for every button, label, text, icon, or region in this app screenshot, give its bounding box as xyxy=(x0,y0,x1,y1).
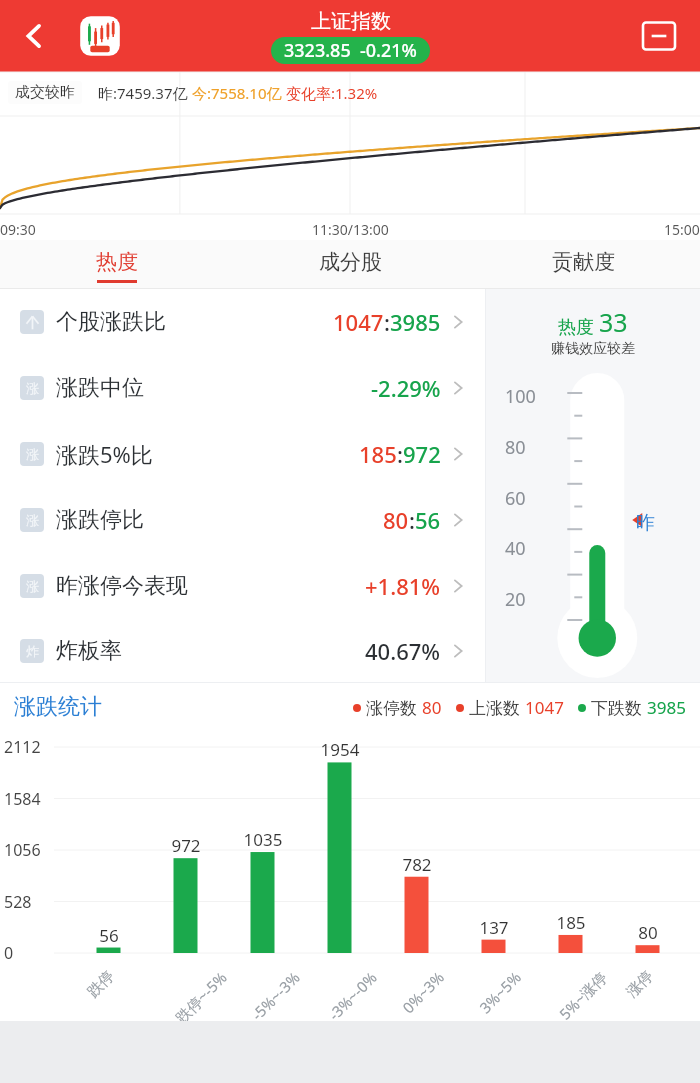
staticText: 56 xyxy=(79,924,139,947)
staticText: 40.67% xyxy=(365,636,441,666)
staticText: 上涨数 xyxy=(469,696,525,719)
staticText: 昨:7459.37亿 xyxy=(98,83,192,103)
staticText: 528 xyxy=(4,891,32,913)
staticText: 昨 xyxy=(636,511,655,535)
staticText: 涨停 xyxy=(623,967,657,1002)
staticText: 40 xyxy=(505,536,526,561)
staticText: 跌停~-5% xyxy=(171,967,231,1027)
button[interactable]: App icon xyxy=(78,14,122,58)
staticText: 100 xyxy=(505,384,536,409)
staticText: +1.81% xyxy=(365,571,441,601)
staticText: 成交较昨 xyxy=(15,83,75,102)
staticText: 1954 xyxy=(310,738,370,761)
staticText: 个股涨跌比 xyxy=(56,308,166,336)
staticText: 下跌数 xyxy=(591,696,647,719)
button[interactable]: 涨 xyxy=(0,355,485,421)
staticText: 33 xyxy=(599,305,628,339)
staticText: 成分股 xyxy=(319,249,382,275)
staticText: 1047 xyxy=(525,696,564,719)
staticText: : xyxy=(409,505,415,535)
button[interactable]: 涨 xyxy=(0,421,485,487)
button[interactable]: 成分股 xyxy=(234,240,467,288)
staticText: 185 xyxy=(359,439,397,469)
button[interactable]: 下跌数 xyxy=(578,696,686,719)
staticText: 涨 xyxy=(26,446,39,462)
staticText: 56 xyxy=(415,505,441,535)
staticText: 5%~涨停 xyxy=(555,967,611,1024)
staticText: 80 xyxy=(505,435,526,460)
staticText: 0 xyxy=(4,942,14,964)
staticText: 1056 xyxy=(4,839,41,861)
staticText: 3985 xyxy=(647,696,686,719)
button[interactable]: 涨停数 xyxy=(353,696,442,719)
staticText: 80 xyxy=(383,505,409,535)
staticText: -5%~-3% xyxy=(247,967,304,1024)
staticText: 2112 xyxy=(4,736,41,758)
staticText: 赚钱效应较差 xyxy=(551,340,635,358)
staticText: 1584 xyxy=(4,788,41,810)
staticText: 3323.85 -0.21% xyxy=(284,38,417,63)
staticText: 涨跌停比 xyxy=(56,506,144,534)
staticText: 热度 xyxy=(558,314,599,339)
button[interactable]: Back xyxy=(10,12,58,60)
button[interactable]: 炸 xyxy=(0,619,485,682)
staticText: 20 xyxy=(505,587,526,612)
staticText: 137 xyxy=(464,916,524,939)
staticText: 上证指数 xyxy=(311,9,391,34)
staticText: 昨涨停今表现 xyxy=(56,572,188,600)
button[interactable]: 涨 xyxy=(0,553,485,619)
staticText: 今:7558.10亿 xyxy=(192,83,286,103)
staticText: 涨 xyxy=(26,578,39,594)
staticText: 炸 xyxy=(26,643,39,659)
staticText: 80 xyxy=(422,696,442,719)
staticText: 涨 xyxy=(26,512,39,528)
staticText: 跌停 xyxy=(84,967,118,1002)
button[interactable]: 上涨数 xyxy=(456,696,564,719)
staticText: 热度 xyxy=(96,249,138,275)
staticText: 1047 xyxy=(333,307,384,337)
staticText: 涨跌统计 xyxy=(14,693,102,721)
staticText: 60 xyxy=(505,486,526,511)
staticText: 11:30/13:00 xyxy=(312,220,389,239)
staticText: : xyxy=(384,307,390,337)
staticText: 09:30 xyxy=(0,220,36,239)
staticText: 变化率:1.32% xyxy=(286,83,378,103)
staticText: 782 xyxy=(387,853,447,876)
staticText: 炸板率 xyxy=(56,637,122,665)
staticText: 15:00 xyxy=(664,220,700,239)
staticText: 0%~3% xyxy=(398,967,448,1017)
button[interactable]: 个股涨跌比 xyxy=(0,289,485,355)
staticText: 3985 xyxy=(390,307,441,337)
staticText: 3%~5% xyxy=(475,967,525,1017)
staticText: -3%~-0% xyxy=(324,967,381,1024)
staticText: 涨跌5%比 xyxy=(56,439,153,469)
staticText: 1035 xyxy=(233,828,293,851)
button[interactable]: 涨 xyxy=(0,487,485,553)
staticText: 972 xyxy=(403,439,441,469)
staticText: : xyxy=(397,439,403,469)
button[interactable]: 热度 xyxy=(0,240,234,288)
button[interactable]: Minimize xyxy=(638,15,680,57)
staticText: 185 xyxy=(541,911,601,934)
staticText: 972 xyxy=(156,834,216,857)
staticText: 涨 xyxy=(26,380,39,396)
button[interactable]: 贡献度 xyxy=(467,240,700,288)
staticText: -2.29% xyxy=(371,373,441,403)
staticText: 涨跌中位 xyxy=(56,374,144,402)
staticText: 涨停数 xyxy=(366,696,422,719)
staticText: 80 xyxy=(618,921,678,944)
staticText: 贡献度 xyxy=(552,249,615,275)
button[interactable]: 成交较昨 xyxy=(15,83,75,102)
